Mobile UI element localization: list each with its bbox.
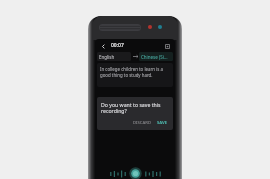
- button[interactable]: Stop recording: [129, 167, 142, 179]
- button[interactable]: SAVE: [155, 119, 170, 127]
- button[interactable]: Swap languages: [131, 52, 139, 61]
- button[interactable]: DISCARD: [131, 119, 153, 127]
- button[interactable]: Settings: [162, 41, 172, 51]
- button[interactable]: Back: [98, 41, 108, 51]
- button[interactable]: English (Unit…: [97, 52, 131, 61]
- staticText: 00:07: [111, 42, 124, 49]
- button[interactable]: In college children to learn is a good t…: [97, 63, 173, 87]
- staticText: SAVE: [157, 120, 168, 126]
- staticText: English (Unit…: [99, 54, 129, 60]
- staticText: Chinese (Si…: [141, 54, 168, 60]
- staticText: Do you want to save this recording?: [101, 101, 170, 115]
- staticText: DISCARD: [133, 120, 151, 126]
- staticText: In college children to learn is a good t…: [100, 66, 170, 78]
- button[interactable]: Chinese (Si…: [139, 52, 173, 61]
